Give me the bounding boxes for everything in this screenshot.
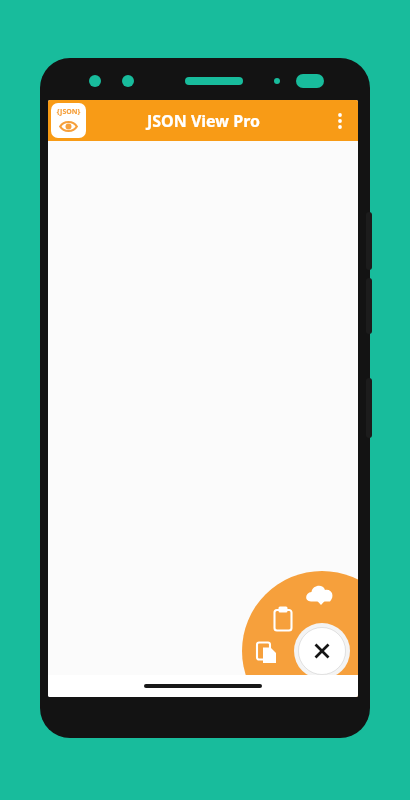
button[interactable]: More options	[322, 103, 358, 139]
button[interactable]: Download JSON	[306, 582, 338, 614]
staticText: {JSON}	[51, 107, 86, 118]
button[interactable]: Close menu	[294, 623, 350, 679]
button[interactable]: Copy JSON	[250, 636, 282, 668]
button[interactable]: Paste from clipboard	[267, 600, 299, 632]
staticText: JSON View Pro	[147, 110, 260, 132]
button[interactable]: JSON View Pro icon	[51, 103, 86, 138]
